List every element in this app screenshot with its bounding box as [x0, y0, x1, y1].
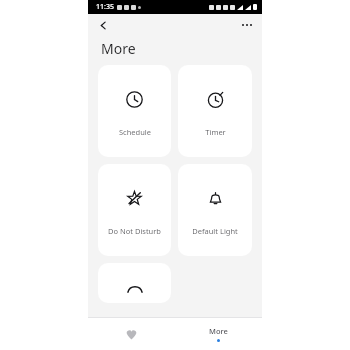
staticText: Default Light [192, 226, 238, 236]
button[interactable]: Default Light [178, 164, 252, 256]
staticText: More [209, 326, 228, 336]
button[interactable]: Do Not Disturb [98, 164, 171, 256]
button[interactable]: Schedule [98, 65, 171, 157]
button[interactable]: Timer [178, 65, 252, 157]
button[interactable]: Back [93, 15, 113, 35]
staticText: Timer [205, 127, 226, 137]
staticText: More [101, 39, 136, 58]
staticText: Do Not Disturb [108, 226, 161, 236]
button[interactable] [98, 263, 171, 303]
button[interactable]: More [175, 318, 262, 350]
staticText: 11:35 [96, 2, 114, 12]
staticText: Schedule [119, 127, 151, 137]
button[interactable]: Home [88, 318, 175, 350]
button[interactable]: More options [237, 15, 257, 35]
